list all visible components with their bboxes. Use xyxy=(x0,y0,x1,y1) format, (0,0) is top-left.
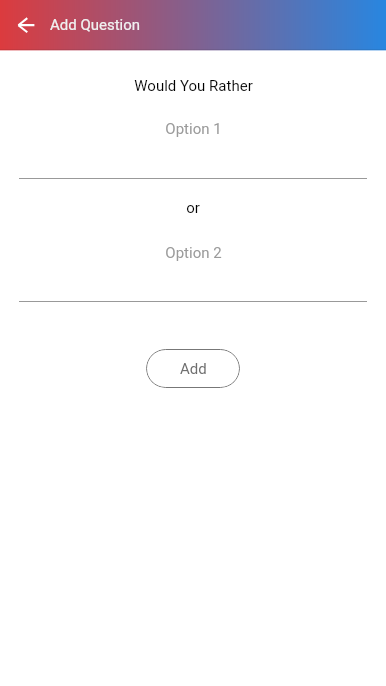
button[interactable]: Navigate up xyxy=(9,8,42,41)
staticText: Would You Rather xyxy=(134,77,253,95)
staticText: Add xyxy=(180,360,207,378)
button[interactable]: Option 2 xyxy=(0,239,386,302)
button[interactable]: Option 1 xyxy=(0,115,386,179)
staticText: Add Question xyxy=(50,16,141,34)
button[interactable]: Add xyxy=(146,349,240,388)
staticText: or xyxy=(186,199,200,217)
staticText: Option 2 xyxy=(165,244,222,262)
staticText: Option 1 xyxy=(165,120,222,138)
